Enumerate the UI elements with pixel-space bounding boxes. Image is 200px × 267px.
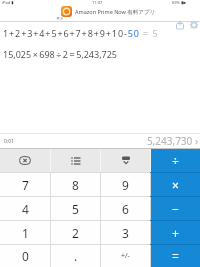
button[interactable]: 7 bbox=[0, 173, 50, 196]
staticText: − bbox=[172, 201, 179, 217]
button[interactable]: × bbox=[151, 173, 200, 196]
staticText: 1 bbox=[22, 225, 29, 241]
staticText: 15,025 × 698 ÷ 2 = 5,243,725 bbox=[3, 48, 118, 60]
staticText: . bbox=[74, 248, 78, 264]
button[interactable] bbox=[51, 149, 100, 172]
button[interactable]: = bbox=[151, 245, 200, 267]
button[interactable]: − bbox=[151, 197, 200, 220]
staticText: 5,243,730 › bbox=[0, 134, 198, 148]
button[interactable]: 1 bbox=[0, 221, 50, 244]
staticText: 11:07 bbox=[92, 0, 103, 5]
staticText: 9 bbox=[122, 177, 129, 193]
staticText: 3 bbox=[122, 225, 129, 241]
staticText: iPad ▮ bbox=[2, 0, 14, 5]
staticText: 1+2+3+4+5+6+7+8+9+10-50 = 5 bbox=[3, 27, 159, 39]
staticText: 8 bbox=[72, 177, 79, 193]
staticText: 69% ▮▶ bbox=[172, 0, 187, 5]
staticText: 2 bbox=[72, 225, 79, 241]
staticText: ÷ bbox=[172, 153, 179, 169]
button[interactable]: 8 bbox=[51, 173, 100, 196]
button[interactable]: Amazon Prime Now 有料アプリ bbox=[75, 8, 156, 16]
staticText: 6 bbox=[122, 201, 129, 217]
button[interactable]: . bbox=[51, 245, 100, 267]
staticText: + bbox=[172, 225, 179, 241]
button[interactable] bbox=[0, 149, 50, 172]
button[interactable] bbox=[101, 149, 150, 172]
button[interactable]: 9 bbox=[101, 173, 150, 196]
button[interactable]: 5 bbox=[51, 197, 100, 220]
staticText: +/- bbox=[121, 251, 130, 261]
staticText: = bbox=[172, 248, 179, 264]
button[interactable]: + bbox=[151, 221, 200, 244]
button[interactable]: +/- bbox=[101, 245, 150, 267]
staticText: 0:01 bbox=[4, 138, 14, 145]
button[interactable] bbox=[61, 6, 72, 17]
button[interactable]: 6 bbox=[101, 197, 150, 220]
button[interactable] bbox=[190, 21, 198, 29]
button[interactable]: 2 bbox=[51, 221, 100, 244]
staticText: 0 bbox=[22, 248, 29, 264]
button[interactable]: 0 bbox=[0, 245, 50, 267]
button[interactable] bbox=[176, 21, 184, 29]
staticText: 4 bbox=[22, 201, 29, 217]
staticText: 7 bbox=[22, 177, 29, 193]
staticText: ✕» bbox=[56, 15, 63, 22]
button[interactable]: 3 bbox=[101, 221, 150, 244]
staticText: × bbox=[172, 177, 179, 193]
button[interactable]: 4 bbox=[0, 197, 50, 220]
button[interactable]: ÷ bbox=[151, 149, 200, 172]
staticText: 5 bbox=[72, 201, 79, 217]
